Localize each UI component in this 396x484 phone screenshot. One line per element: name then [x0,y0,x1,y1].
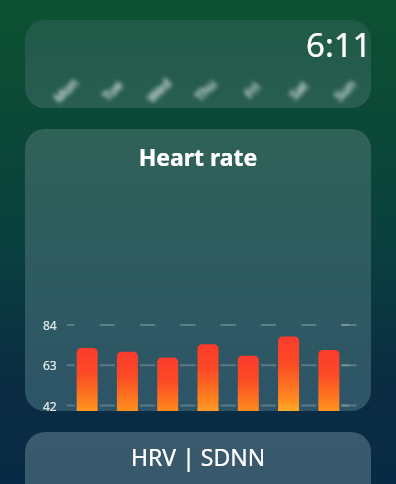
staticText: 6:11 [306,22,372,67]
staticText: Heart rate [25,141,371,172]
button[interactable] [25,20,371,108]
button[interactable]: Heart rate [25,129,371,411]
button[interactable]: HRV | SDNN [25,432,371,484]
staticText: HRV | SDNN [131,441,266,472]
